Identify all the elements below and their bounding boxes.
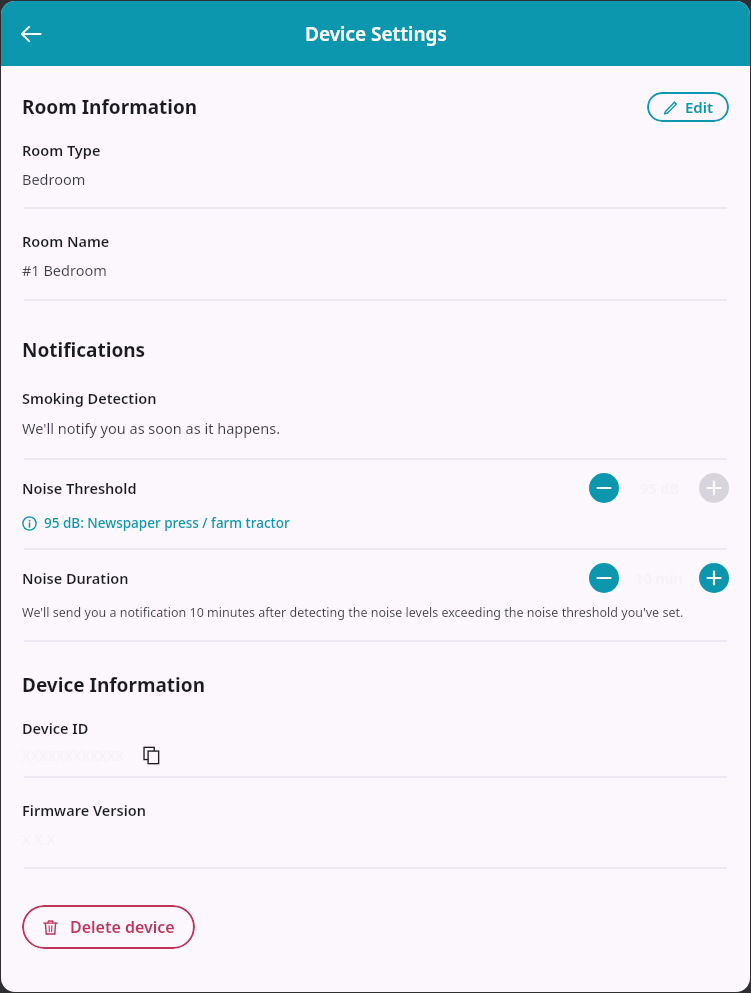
staticText: Device Information bbox=[22, 672, 206, 698]
staticText: Bedroom bbox=[22, 169, 86, 189]
staticText: #1 Bedroom bbox=[22, 260, 107, 280]
button[interactable]: Copy device ID bbox=[138, 742, 164, 768]
button[interactable]: Back bbox=[9, 12, 53, 56]
staticText: We'll notify you as soon as it happens. bbox=[22, 418, 281, 438]
staticText: Room Type bbox=[22, 140, 101, 160]
staticText: Device Settings bbox=[305, 21, 447, 47]
staticText: Device ID bbox=[22, 718, 89, 738]
staticText: Room Information bbox=[22, 94, 647, 120]
button[interactable]: Decrease Noise Duration bbox=[589, 563, 619, 593]
button[interactable]: Delete device bbox=[22, 905, 195, 949]
staticText: Smoking Detection bbox=[22, 388, 157, 408]
button[interactable]: Increase Noise Duration bbox=[699, 563, 729, 593]
button[interactable]: Decrease Noise Threshold bbox=[589, 473, 619, 503]
staticText: Delete device bbox=[70, 916, 175, 938]
staticText: Notifications bbox=[22, 337, 146, 363]
staticText: 95 dB: Newspaper press / farm tractor bbox=[44, 514, 290, 532]
staticText: Noise Threshold bbox=[22, 478, 589, 498]
button[interactable]: Edit bbox=[647, 92, 729, 122]
staticText: We'll send you a notification 10 minutes… bbox=[22, 604, 684, 621]
staticText: Room Name bbox=[22, 231, 110, 251]
staticText: Edit bbox=[685, 97, 714, 117]
button[interactable]: Increase Noise Threshold bbox=[699, 473, 729, 503]
staticText: Firmware Version bbox=[22, 800, 146, 820]
staticText: Noise Duration bbox=[22, 568, 589, 588]
